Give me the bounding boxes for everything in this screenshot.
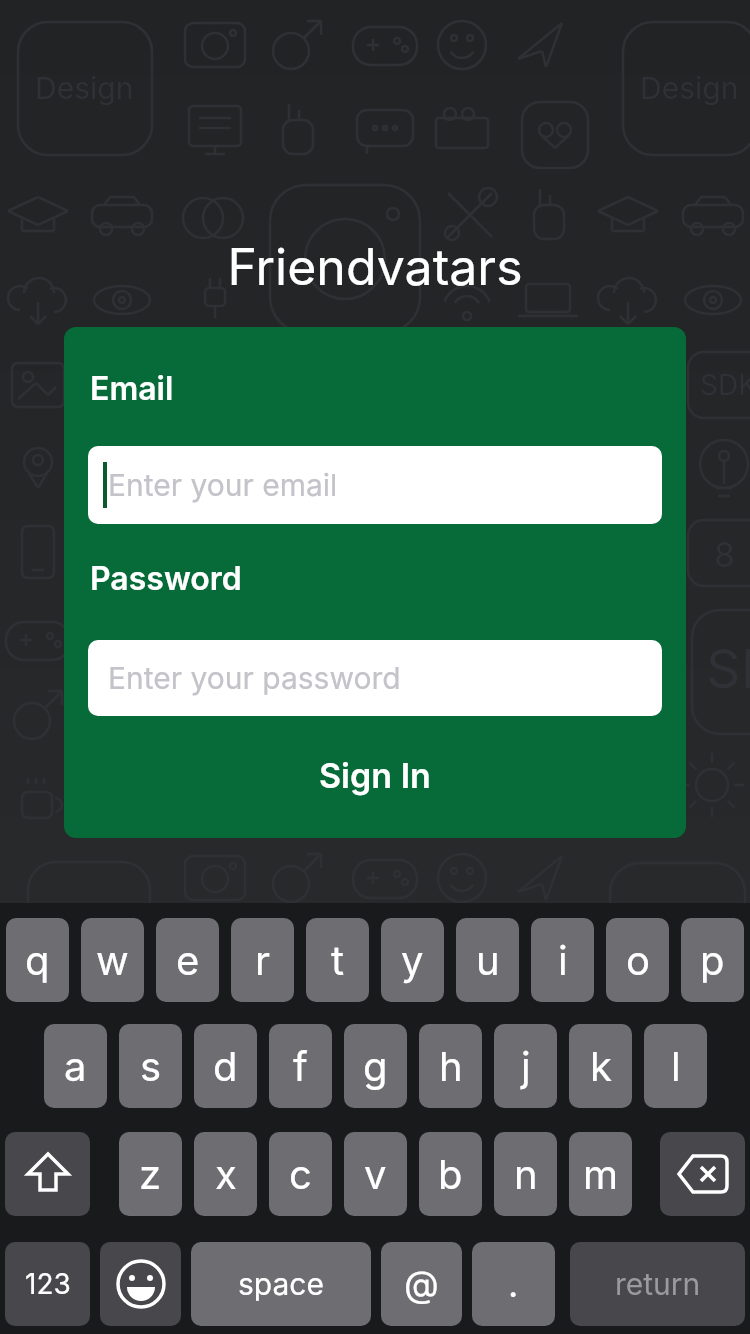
staticText: u [476,936,500,984]
button[interactable]: k [569,1024,632,1108]
staticText: n [514,1150,538,1198]
button[interactable] [5,1132,90,1216]
button[interactable]: l [644,1024,707,1108]
staticText: y [401,936,424,984]
button[interactable]: n [494,1132,557,1216]
button[interactable]: w [81,918,144,1002]
button[interactable]: m [569,1132,632,1216]
staticText: t [331,936,345,984]
staticText: v [364,1150,387,1198]
button[interactable]: q [6,918,69,1002]
button[interactable]: t [306,918,369,1002]
staticText: o [626,936,650,984]
staticText: m [583,1150,619,1198]
staticText: 8 [714,534,736,575]
button[interactable]: Enter your password [88,640,662,716]
staticText: Design [35,70,134,106]
staticText: a [64,1042,87,1090]
staticText: w [96,936,129,984]
button[interactable]: @ [381,1242,462,1326]
button[interactable]: v [344,1132,407,1216]
staticText: r [255,936,271,984]
button[interactable] [660,1132,745,1216]
staticText: Friendvatars [0,237,750,297]
staticText: x [215,1150,237,1198]
staticText: s [140,1042,162,1090]
button[interactable]: . [472,1242,555,1326]
staticText: Enter your password [108,660,401,696]
staticText: q [25,936,50,984]
staticText: Sign In [319,755,431,796]
button[interactable]: x [194,1132,257,1216]
staticText: space [238,1266,324,1302]
staticText: i [558,936,568,984]
staticText: d [213,1042,238,1090]
staticText: 123 [25,1267,71,1301]
staticText: SDK [700,368,750,402]
button[interactable]: j [494,1024,557,1108]
button[interactable]: y [381,918,444,1002]
staticText: j [521,1042,531,1090]
button[interactable]: space [191,1242,371,1326]
staticText: c [289,1150,312,1198]
button[interactable]: c [269,1132,332,1216]
staticText: . [508,1262,519,1306]
staticText: k [590,1042,612,1090]
button[interactable]: r [231,918,294,1002]
staticText: @ [404,1262,439,1306]
button[interactable]: Enter your email [88,446,662,524]
staticText: p [700,936,725,984]
staticText: z [139,1150,162,1198]
button[interactable]: h [419,1024,482,1108]
staticText: Enter your email [108,467,338,503]
button[interactable]: 123 [5,1242,90,1326]
staticText: Password [90,559,242,598]
button[interactable]: z [119,1132,182,1216]
button[interactable]: g [344,1024,407,1108]
button[interactable]: d [194,1024,257,1108]
button[interactable]: return [570,1242,745,1326]
staticText: Design [640,70,739,106]
button[interactable]: a [44,1024,107,1108]
button[interactable]: f [269,1024,332,1108]
staticText: SI [706,636,750,701]
button[interactable]: Sign In [64,755,686,796]
button[interactable]: o [606,918,669,1002]
button[interactable] [100,1242,181,1326]
staticText: l [671,1042,681,1090]
staticText: g [363,1042,388,1090]
staticText: f [293,1042,308,1090]
button[interactable]: u [456,918,519,1002]
button[interactable]: i [531,918,594,1002]
staticText: Email [90,369,174,408]
button[interactable]: e [156,918,219,1002]
staticText: b [438,1150,463,1198]
button[interactable]: p [681,918,744,1002]
staticText: return [615,1266,701,1302]
button[interactable]: b [419,1132,482,1216]
staticText: h [439,1042,463,1090]
staticText: e [176,936,200,984]
button[interactable]: s [119,1024,182,1108]
